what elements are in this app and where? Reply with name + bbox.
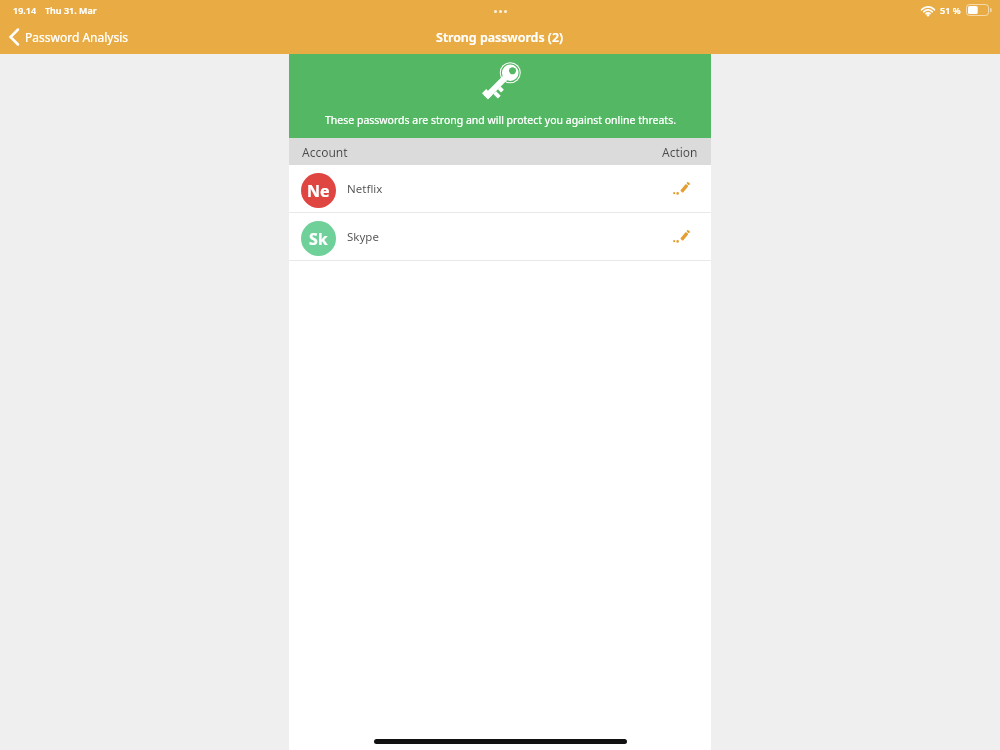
staticText: Strong passwords (2) [436,29,564,46]
staticText: Action [662,144,698,160]
staticText: Netflix [347,181,383,197]
button[interactable] [673,183,688,195]
staticText: 19.14 [13,4,37,16]
staticText: Password Analysis [25,29,129,45]
staticText: Thu 31. Mar [45,4,97,16]
staticText: Account [302,144,348,160]
button[interactable] [673,231,688,243]
button[interactable]: Password Analysis [8,27,129,47]
staticText: Ne [307,180,330,202]
button[interactable]: Ne [289,165,711,212]
staticText: These passwords are strong and will prot… [325,113,676,127]
staticText: Sk [309,228,328,250]
staticText: Skype [347,229,379,245]
staticText: 51 % [940,4,961,16]
button[interactable]: Sk [289,213,711,260]
